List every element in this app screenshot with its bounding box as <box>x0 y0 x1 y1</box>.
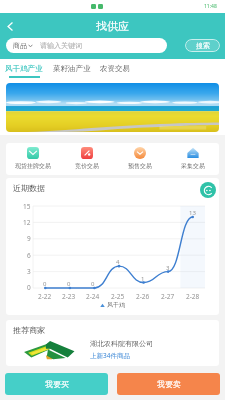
staticText: 2-23 <box>62 292 76 301</box>
button[interactable]: 风干鸡产业 <box>5 59 43 78</box>
staticText: 15 <box>23 202 31 211</box>
staticText: 湖北农科院有限公司 <box>90 339 153 348</box>
staticText: 3 <box>27 267 31 276</box>
button[interactable]: 农资交易 <box>100 59 130 76</box>
staticText: 2-25 <box>111 292 125 301</box>
staticText: 2-28 <box>186 292 200 301</box>
staticText: 2-22 <box>38 292 52 301</box>
button[interactable]: 商品 <box>6 38 167 53</box>
button[interactable]: Back <box>0 16 20 36</box>
staticText: 3 <box>166 264 170 272</box>
staticText: 0 <box>43 280 47 288</box>
staticText: 12 <box>23 218 31 227</box>
button[interactable]: 竞价交易 <box>60 147 113 170</box>
staticText: 预售交易 <box>128 162 152 170</box>
button[interactable]: 现货挂牌交易 <box>6 147 60 170</box>
staticText: 找供应 <box>96 19 129 33</box>
staticText: 竞价交易 <box>75 162 99 170</box>
staticText: 搜索 <box>196 41 210 50</box>
staticText: 9 <box>27 234 31 243</box>
staticText: 1 <box>141 275 145 283</box>
button[interactable]: 我要买 <box>5 373 108 395</box>
staticText: 0 <box>27 283 31 292</box>
staticText: 采集交易 <box>181 162 205 170</box>
staticText: 2-24 <box>86 292 100 301</box>
staticText: 我要卖 <box>157 379 181 389</box>
button[interactable]: 菜籽油产业 <box>53 59 91 76</box>
staticText: 0 <box>91 280 95 288</box>
button[interactable]: 湖北农科院有限公司 <box>6 339 219 366</box>
staticText: 风干鸡产业 <box>5 64 43 73</box>
staticText: 商品 <box>13 41 27 50</box>
staticText: 近期数据 <box>13 183 45 193</box>
button[interactable]: 我要卖 <box>117 373 220 395</box>
button[interactable]: Refresh <box>200 182 216 198</box>
staticText: 13 <box>189 209 196 217</box>
button[interactable]: Banner <box>6 83 219 132</box>
staticText: 4 <box>116 258 120 266</box>
button[interactable]: 搜索 <box>185 39 220 52</box>
staticText: 2-26 <box>136 292 150 301</box>
staticText: 风干鸡 <box>107 301 125 309</box>
staticText: 推荐商家 <box>13 325 45 335</box>
staticText: 11:48 <box>204 3 217 10</box>
staticText: 请输入关键词 <box>40 41 82 50</box>
staticText: 我要买 <box>45 379 69 389</box>
staticText: 上新34件商品 <box>90 351 130 360</box>
button[interactable]: 预售交易 <box>113 147 166 170</box>
staticText: 0 <box>67 280 71 288</box>
button[interactable]: 采集交易 <box>166 147 219 170</box>
staticText: 6 <box>27 251 31 260</box>
staticText: 菜籽油产业 <box>53 64 91 73</box>
staticText: 现货挂牌交易 <box>15 162 51 170</box>
staticText: 农资交易 <box>100 64 130 73</box>
staticText: 2-27 <box>161 292 175 301</box>
